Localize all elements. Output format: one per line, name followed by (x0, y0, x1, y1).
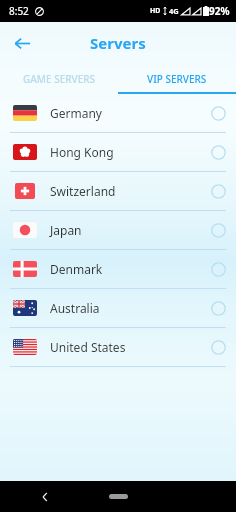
button[interactable]: Switzerland (0, 172, 236, 211)
staticText: VIP SERVERS (147, 72, 207, 86)
button[interactable]: VIP SERVERS (118, 64, 236, 94)
staticText: HD (150, 6, 161, 16)
other: Select Hong Kong (211, 145, 226, 160)
button[interactable]: Germany (0, 94, 236, 133)
staticText: 4G (169, 6, 179, 16)
button[interactable]: Home (109, 494, 128, 499)
button[interactable]: Denmark (0, 250, 236, 289)
button[interactable]: Australia (0, 289, 236, 328)
other: Select Germany (211, 106, 226, 121)
staticText: Servers (90, 33, 146, 53)
button[interactable]: Hong Kong (0, 133, 236, 172)
staticText: Hong Kong (50, 144, 114, 160)
other: Select Switzerland (211, 184, 226, 199)
other: Select Australia (211, 301, 226, 316)
button[interactable]: Japan (0, 211, 236, 250)
staticText: Australia (50, 300, 100, 316)
staticText: Germany (50, 105, 102, 121)
other: Select United States (211, 340, 226, 355)
button[interactable]: Back (6, 27, 38, 59)
staticText: United States (50, 339, 126, 355)
staticText: GAME SERVERS (23, 72, 96, 86)
staticText: Denmark (50, 261, 103, 277)
button[interactable]: GAME SERVERS (0, 64, 118, 94)
other: Select Denmark (211, 262, 226, 277)
staticText: 92% (209, 4, 230, 18)
button[interactable]: United States (0, 328, 236, 367)
button[interactable]: Back (33, 485, 57, 509)
staticText: 8:52 (9, 4, 29, 18)
staticText: Switzerland (50, 183, 116, 199)
staticText: Japan (50, 222, 82, 238)
other: Select Japan (211, 223, 226, 238)
